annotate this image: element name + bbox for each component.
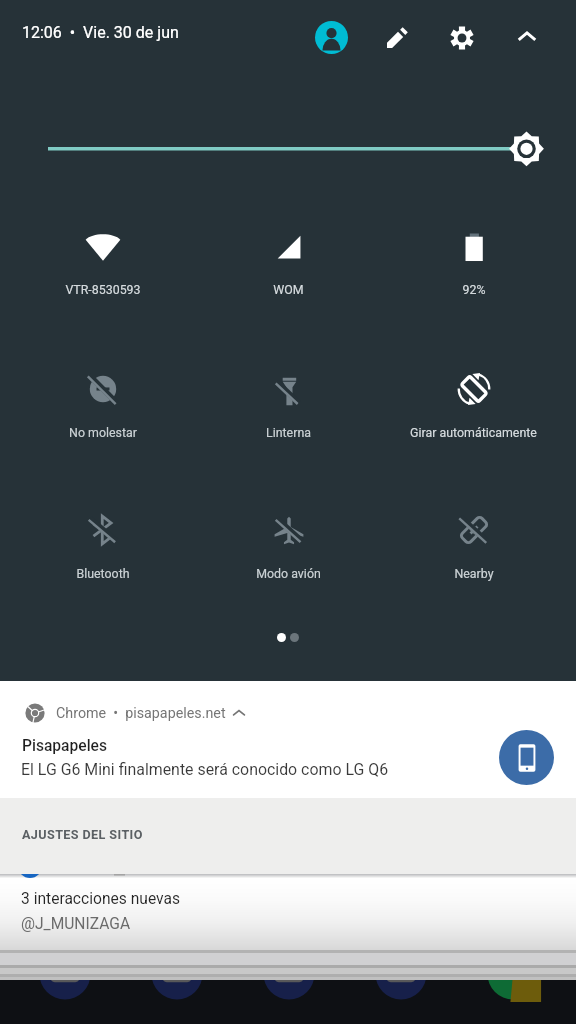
staticText: AJUSTES DEL SITIO (22, 827, 143, 842)
button[interactable]: Brightness (0, 124, 576, 174)
staticText: Nearby (454, 566, 494, 581)
button[interactable]: WOM (196, 228, 381, 297)
staticText: Bluetooth (76, 566, 130, 581)
staticText: Girar automáticamente (410, 425, 537, 440)
staticText: @J_MUNIZAGA (21, 915, 131, 933)
button[interactable]: Girar automáticamente (381, 371, 566, 440)
button[interactable]: 92% (381, 228, 566, 297)
staticText: 92% (462, 282, 486, 297)
staticText: WOM (273, 282, 304, 297)
button[interactable]: Collapse (504, 15, 549, 60)
staticText: Linterna (266, 425, 311, 440)
staticText: 3 interacciones nuevas (21, 890, 181, 908)
staticText: VTR-8530593 (65, 282, 141, 297)
button[interactable]: VTR-8530593 (10, 228, 196, 297)
button[interactable]: Linterna (196, 371, 381, 440)
staticText: 12:06 • Vie. 30 de jun (22, 23, 179, 42)
button[interactable]: User account (309, 15, 354, 60)
button[interactable]: Open app (499, 730, 554, 785)
staticText: No molestar (69, 425, 137, 440)
staticText: Modo avión (256, 566, 321, 581)
button[interactable]: Edit tiles (375, 15, 420, 60)
button[interactable]: Modo avión (196, 512, 381, 581)
button[interactable]: No molestar (10, 371, 196, 440)
staticText: Chrome • pisapapeles.net (56, 705, 226, 722)
staticText: Pisapapeles (22, 737, 107, 755)
staticText: El LG G6 Mini finalmente será conocido c… (21, 760, 389, 779)
button[interactable]: Nearby (381, 512, 566, 581)
button[interactable]: Settings (439, 15, 484, 60)
button[interactable]: Bluetooth (10, 512, 196, 581)
